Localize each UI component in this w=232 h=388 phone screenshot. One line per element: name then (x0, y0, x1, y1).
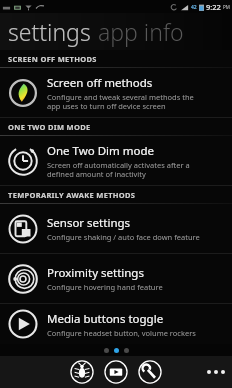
button[interactable]: Tools (137, 359, 163, 385)
staticText: Proximity settings (47, 265, 144, 281)
staticText: Screen off automatically activates after… (47, 160, 190, 179)
staticText: Configure shaking / auto face down featu… (47, 232, 200, 242)
button[interactable]: One Two Dim mode (0, 136, 232, 185)
staticText: ONE TWO DIM MODE (8, 122, 91, 132)
staticText: settings (8, 16, 91, 47)
staticText: SCREEN OFF METHODS (8, 54, 97, 64)
button[interactable]: Proximity settings (0, 254, 232, 303)
staticText: Screen off methods (47, 75, 153, 91)
staticText: 9:22 (206, 2, 221, 12)
staticText: TEMPORARILY AWAKE METHODS (8, 190, 136, 200)
staticText: PM (223, 4, 230, 10)
staticText: Media buttons toggle (47, 311, 164, 327)
button[interactable]: Sensor settings (0, 204, 232, 253)
staticText: Configure and tweak several methods the … (47, 92, 194, 111)
button[interactable]: More options (200, 361, 232, 383)
button[interactable]: Bug report (69, 359, 95, 385)
staticText: Configure hovering hand feature (47, 282, 163, 292)
staticText: Sensor settings (47, 215, 131, 231)
button[interactable]: Video (103, 359, 129, 385)
staticText: Configure headset button, volume rockers (47, 328, 196, 338)
button[interactable]: Screen off methods (0, 68, 232, 117)
staticText: One Two Dim mode (47, 143, 155, 159)
staticText: app info (98, 16, 184, 47)
staticText: 42 (191, 4, 197, 11)
button[interactable]: Media buttons toggle (0, 304, 232, 344)
